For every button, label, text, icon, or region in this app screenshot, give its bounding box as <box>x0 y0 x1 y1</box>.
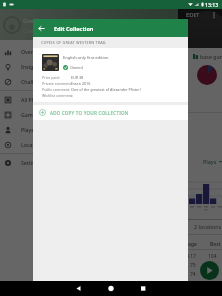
staticText: Challenges <box>21 78 49 85</box>
staticText: One of the greatest of Alexander Pfister… <box>71 87 141 92</box>
staticText: Wishlist comment: <box>42 93 74 98</box>
button[interactable]: Back <box>33 20 50 37</box>
button[interactable]: Players <box>0 122 178 137</box>
staticText: base game <box>200 53 222 60</box>
staticText: Edit Collection <box>54 25 94 32</box>
button[interactable]: ADD COPY TO YOUR COLLECTION <box>33 105 188 120</box>
staticText: Coo... <box>23 27 38 34</box>
staticText: EDIT <box>186 11 200 19</box>
staticText: Price paid: <box>42 75 60 80</box>
staticText: Private comment: <box>42 81 72 86</box>
staticText: Players <box>21 126 39 133</box>
button[interactable]: Insights <box>0 59 178 74</box>
staticText: Essen 2016 <box>71 81 91 86</box>
button[interactable]: Games <box>0 107 178 122</box>
staticText: 74 <box>190 271 196 278</box>
button[interactable]: Settings <box>0 155 178 170</box>
staticText: Locations <box>21 141 45 148</box>
staticText: - <box>71 93 73 98</box>
staticText: Overview <box>21 48 45 55</box>
staticText: Public comment: <box>42 87 71 92</box>
staticText: Settings <box>21 159 42 166</box>
staticText: 2 locations <box>194 223 222 230</box>
staticText: EUR 38 <box>71 75 84 80</box>
button[interactable]: Overview <box>0 44 178 59</box>
staticText: 13:13 <box>205 1 219 8</box>
staticText: 104 <box>208 253 217 260</box>
staticText: 0.17 <box>186 253 196 260</box>
staticText: Goe... <box>23 17 39 24</box>
staticText: COPIES OF GREAT WESTERN TRAIL <box>41 40 107 45</box>
button[interactable]: Locations <box>0 137 178 152</box>
staticText: Games <box>21 111 39 118</box>
staticText: English-only first edition <box>63 55 109 60</box>
staticText: Insights <box>21 63 41 70</box>
staticText: Plays <box>203 158 217 165</box>
staticText: ADD COPY TO YOUR COLLECTION <box>50 110 129 116</box>
staticText: All Plays <box>21 96 42 103</box>
button[interactable]: More options <box>209 10 219 20</box>
staticText: rage <box>186 241 197 248</box>
button[interactable]: Challenges <box>0 74 178 89</box>
button[interactable]: Start play <box>200 261 219 280</box>
staticText: Best <box>210 241 221 248</box>
staticText: Owned <box>70 65 83 70</box>
staticText: 75 <box>190 262 196 269</box>
button[interactable]: All Plays <box>0 92 178 107</box>
